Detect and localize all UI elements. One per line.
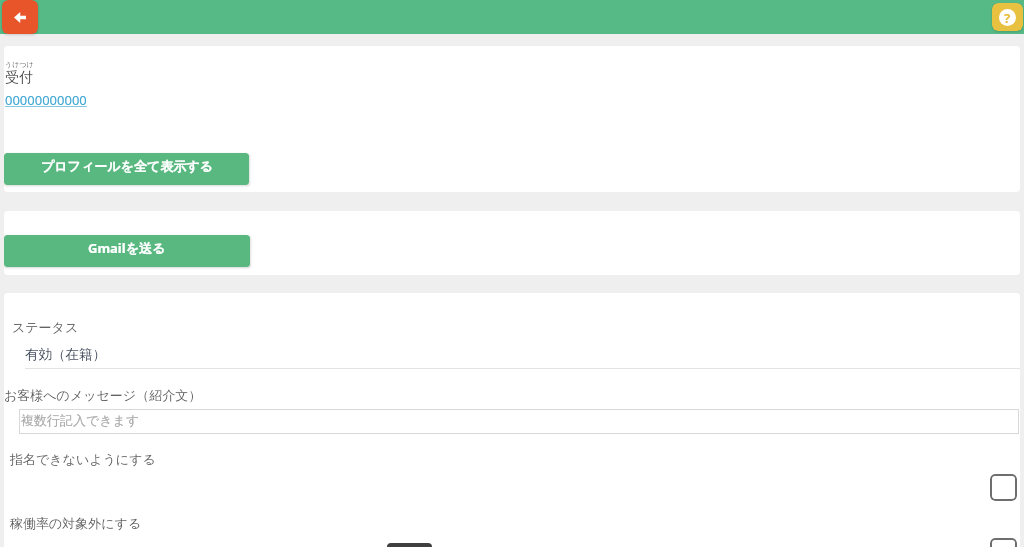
- staticText: ?: [1004, 9, 1011, 26]
- staticText: 有効（在籍）: [25, 346, 106, 363]
- button[interactable]: 稼働率の対象外にする: [990, 538, 1017, 547]
- button[interactable]: 有効（在籍）: [25, 346, 1020, 369]
- button[interactable]: 指名できないようにする: [990, 474, 1017, 501]
- staticText: お客様へのメッセージ（紹介文）: [4, 387, 202, 403]
- button[interactable]: Gmailを送る: [4, 235, 250, 267]
- staticText: 受付: [5, 69, 33, 87]
- button[interactable]: プロフィールを全て表示する: [4, 153, 249, 185]
- staticText: うけつけ: [5, 60, 34, 69]
- button[interactable]: 指名できないようにする: [4, 451, 1020, 501]
- staticText: 稼働率の対象外にする: [10, 515, 142, 531]
- staticText: 指名できないようにする: [10, 451, 156, 467]
- staticText: 複数行記入できます: [21, 412, 140, 428]
- staticText: Gmailを送る: [88, 239, 166, 257]
- staticText: ステータス: [12, 319, 79, 335]
- button[interactable]: Back: [2, 0, 38, 34]
- button[interactable]: 複数行記入できます: [19, 409, 1019, 434]
- staticText: プロフィールを全て表示する: [41, 158, 213, 174]
- button[interactable]: 00000000000: [5, 91, 87, 109]
- button[interactable]: Help: [992, 3, 1023, 31]
- button[interactable]: 稼働率の対象外にする: [4, 515, 1020, 547]
